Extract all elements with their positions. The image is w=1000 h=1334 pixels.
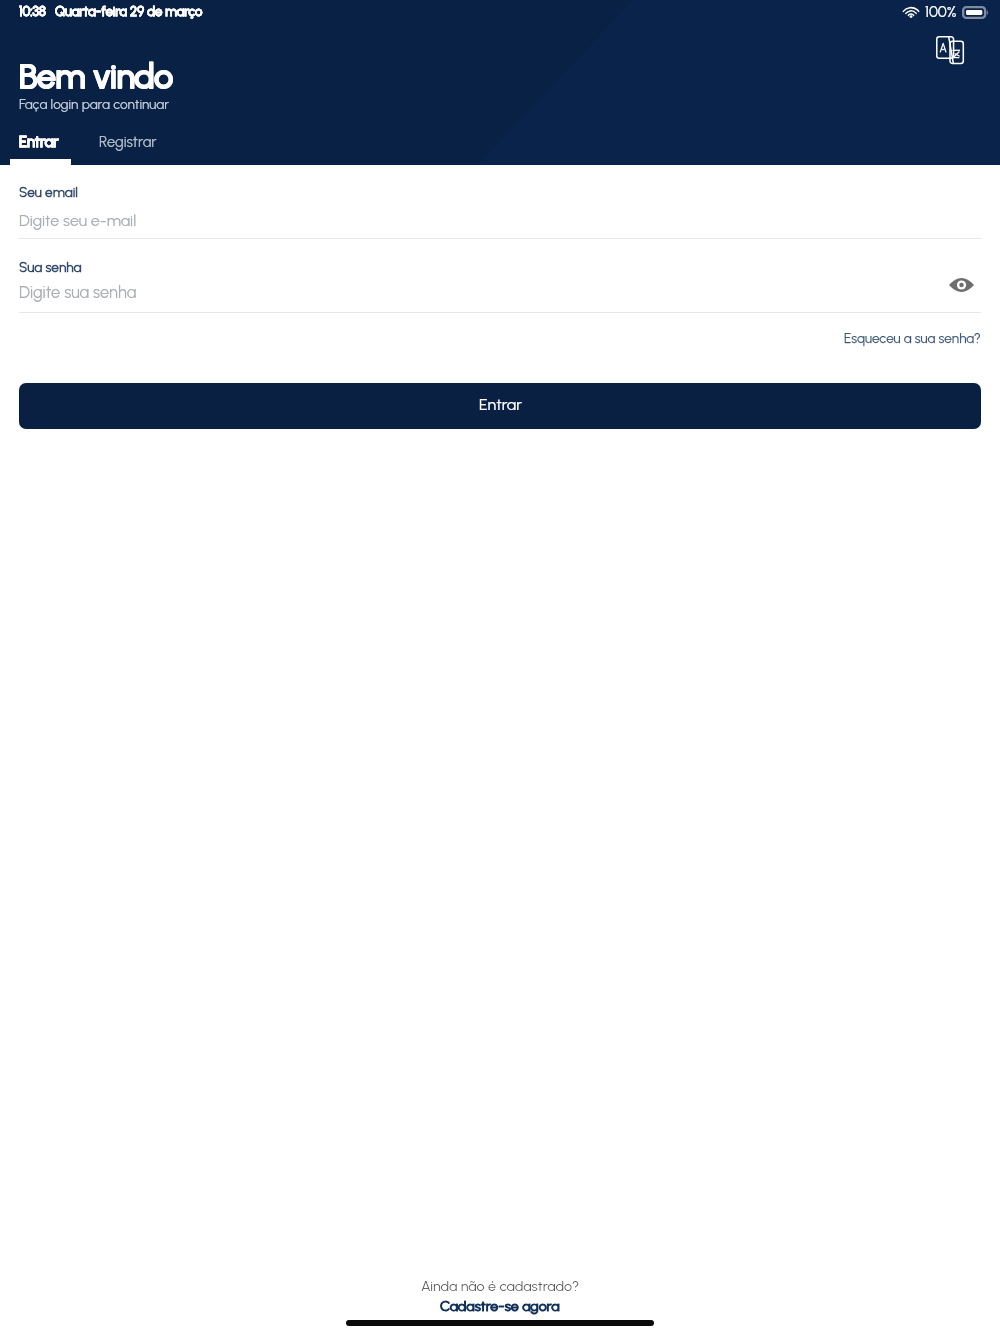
button[interactable]: Cadastre-se agora	[440, 1297, 560, 1314]
staticText: Seu email	[19, 184, 78, 200]
staticText: Ainda não é cadastrado?	[421, 1277, 580, 1294]
staticText: Sua senha	[19, 259, 82, 275]
staticText: Bem vindo	[19, 56, 174, 96]
staticText: Faça login para continuar	[19, 96, 170, 112]
staticText: Bem vindo	[19, 56, 174, 96]
staticText: Registrar	[99, 133, 157, 151]
staticText: Cadastre-se agora	[440, 1297, 560, 1314]
staticText: Digite sua senha	[19, 282, 137, 302]
staticText: Entrar	[479, 395, 522, 414]
staticText: 10:38	[19, 4, 46, 20]
staticText: Quarta-feira 29 de março	[55, 4, 203, 20]
staticText: Quarta-feira 29 de março	[55, 4, 203, 20]
button[interactable]: Entrar	[19, 383, 981, 429]
staticText: Entrar	[19, 133, 59, 151]
staticText: Cadastre-se agora	[440, 1297, 560, 1314]
button[interactable]: Show password	[948, 272, 974, 298]
staticText: 10:38	[19, 4, 46, 20]
staticText: Digite seu e-mail	[19, 211, 137, 230]
button[interactable]: Registrar	[80, 133, 177, 151]
button[interactable]: Entrar	[0, 133, 80, 151]
button[interactable]: Esqueceu a sua senha?	[844, 330, 981, 346]
staticText: 100%	[925, 3, 957, 21]
staticText: Esqueceu a sua senha?	[844, 330, 981, 346]
button[interactable]: Translate	[936, 36, 964, 64]
staticText: Esqueceu a sua senha?	[844, 330, 981, 346]
staticText: Entrar	[19, 133, 59, 151]
